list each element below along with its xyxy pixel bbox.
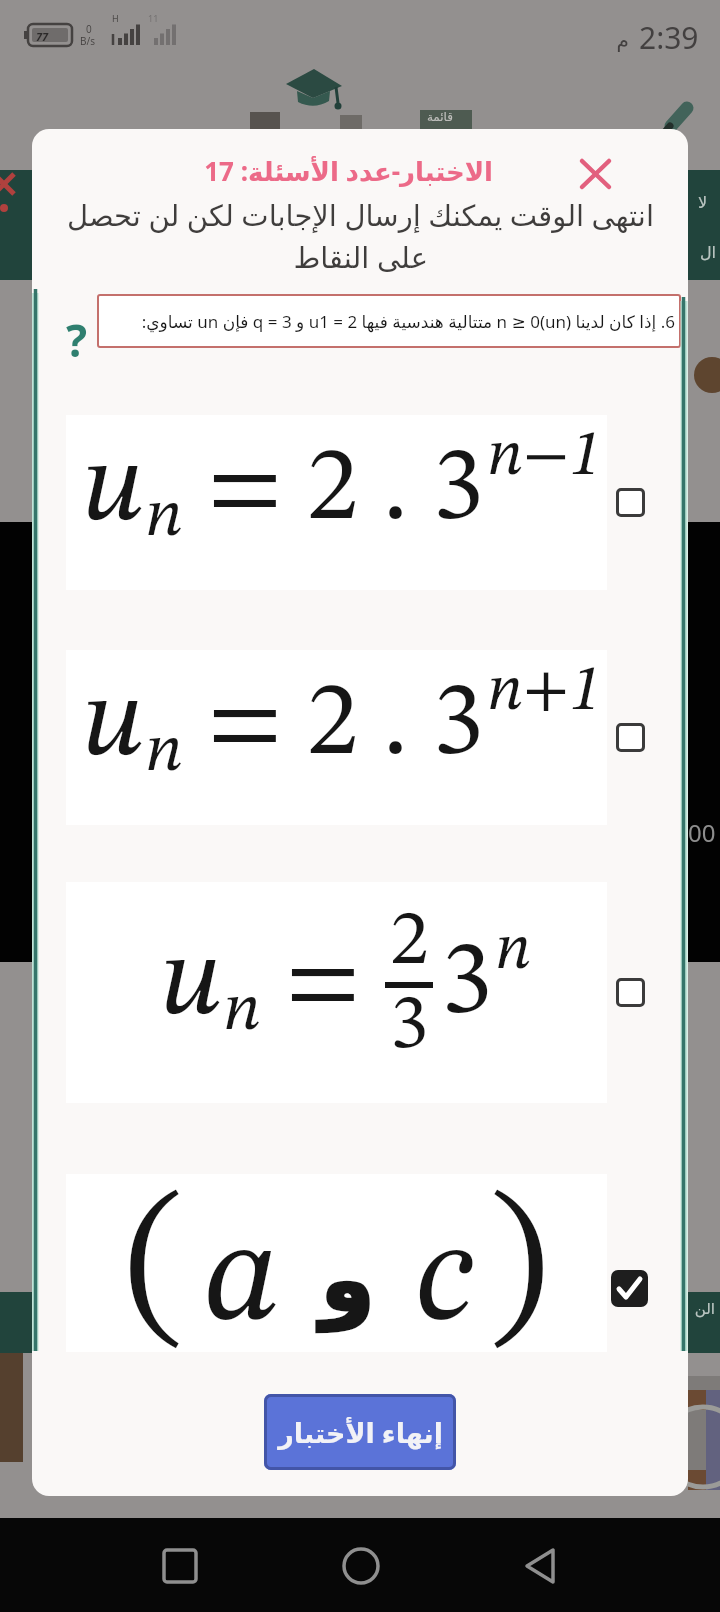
staticText: a [204,1210,280,1352]
staticText: ) [489,1185,548,1357]
staticText: u [82,435,145,547]
staticText: 2:39 [639,17,699,58]
staticText: n [145,484,183,551]
staticText: n [145,719,183,786]
staticText: م [616,28,629,51]
staticText: B/s [80,34,96,48]
staticText: 77 [36,29,49,44]
staticText: 6. إذا كان لدينا (un)n ≥ 0 متتالية هندسي… [141,310,675,333]
staticText: n [495,919,532,983]
button[interactable] [616,723,645,752]
staticText: n [223,978,261,1045]
staticText: 3 [441,933,493,1037]
staticText: 0 [86,22,92,36]
staticText: n−1 [487,425,601,489]
button[interactable] [616,488,645,517]
staticText: H [112,12,119,24]
staticText: ? [66,310,87,370]
button[interactable] [524,1548,560,1584]
button[interactable] [162,1548,198,1584]
button[interactable] [343,1548,379,1584]
staticText: ال [699,243,716,262]
staticText: على النقاط [293,237,428,276]
staticText: = 2 . 3 [183,674,485,778]
staticText: إنهاء الأختبار [278,1414,443,1451]
staticText: u [160,929,223,1041]
staticText: لا [697,193,707,212]
staticText: قائمة [426,110,453,124]
staticText: 3 [390,988,429,1066]
staticText: = [261,933,385,1037]
staticText: ( [125,1185,184,1357]
button[interactable]: u [66,882,607,1103]
button[interactable]: إنهاء الأختبار [264,1394,456,1470]
staticText: و [320,1228,375,1330]
staticText: u [82,670,145,782]
button[interactable]: u [66,650,607,825]
button[interactable]: ( [66,1174,607,1352]
staticText: الن [694,1300,715,1317]
staticText: 2 [390,904,429,982]
staticText: الاختبار-عدد الأسئلة: 17 [204,153,493,188]
staticText: 00 [688,816,716,849]
staticText: = 2 . 3 [183,439,485,543]
button[interactable]: u [66,415,607,590]
staticText: انتهى الوقت يمكنك إرسال الإجابات لكن لن … [66,195,654,234]
button[interactable] [611,1270,648,1307]
button[interactable] [570,150,620,198]
staticText: n+1 [487,660,601,724]
staticText: 11 [148,12,159,24]
staticText: c [415,1210,473,1352]
button[interactable] [616,978,645,1007]
